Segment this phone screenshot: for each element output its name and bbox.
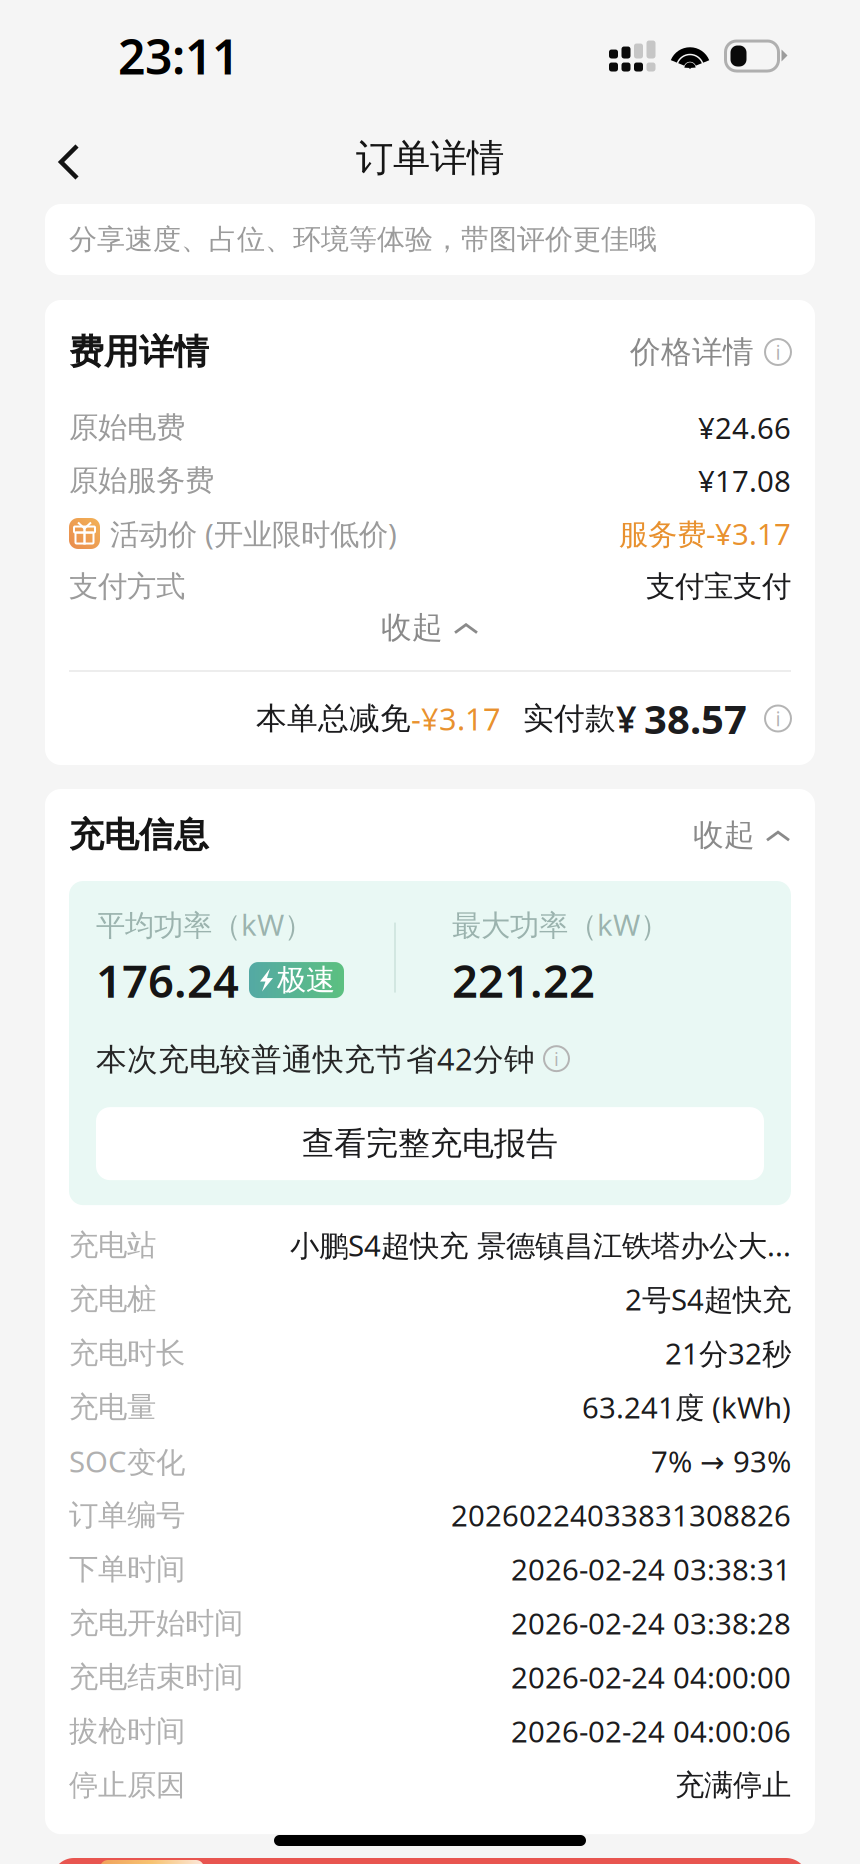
button[interactable]: 收起: [69, 613, 791, 642]
staticText: 221.22: [452, 950, 595, 1010]
staticText: ¥24.66: [698, 408, 791, 447]
staticText: 7% → 93%: [651, 1442, 791, 1481]
button[interactable]: 本单总减免: [69, 672, 791, 765]
button[interactable]: 返回: [0, 121, 111, 195]
staticText: 176.24: [96, 950, 239, 1010]
staticText: 2026-02-24 04:00:06: [511, 1712, 791, 1751]
staticText: 充满停止: [675, 1767, 791, 1803]
staticText: 21分32秒: [665, 1334, 791, 1373]
staticText: 收起: [381, 609, 443, 646]
staticText: 本单总减免: [256, 700, 411, 737]
staticText: 查看完整充电报告: [302, 1124, 558, 1163]
staticText: 订单详情: [356, 135, 504, 181]
staticText: 2026-02-24 03:38:28: [511, 1604, 791, 1643]
staticText: 充电结束时间: [69, 1659, 243, 1695]
staticText: 价格详情: [630, 333, 754, 371]
staticText: 最大功率（kW）: [452, 905, 669, 944]
button[interactable]: 收起: [693, 816, 791, 854]
staticText: 分享速度、占位、环境等体验，带图评价更佳哦: [69, 222, 657, 257]
staticText: 服务费-¥3.17: [619, 514, 791, 553]
staticText: ¥17.08: [698, 461, 791, 500]
button[interactable]: 价格详情: [630, 333, 791, 371]
staticText: -¥3.17: [411, 698, 501, 739]
staticText: 费用详情: [69, 331, 209, 373]
staticText: 充电时长: [69, 1335, 185, 1371]
staticText: 充电站: [69, 1227, 156, 1263]
staticText: 原始服务费: [69, 462, 214, 498]
button[interactable]: 分享速度、占位、环境等体验，带图评价更佳哦: [45, 204, 815, 275]
staticText: 充电桩: [69, 1281, 156, 1317]
staticText: 支付方式: [69, 568, 185, 604]
staticText: 2026-02-24 04:00:00: [511, 1658, 791, 1697]
staticText: 充电量: [69, 1389, 156, 1425]
staticText: i: [775, 705, 780, 732]
staticText: 停止原因: [69, 1767, 185, 1803]
staticText: 38.57: [644, 692, 747, 745]
staticText: 2号S4超快充: [625, 1280, 791, 1319]
button[interactable]: 查看完整充电报告: [96, 1107, 764, 1180]
staticText: 小鹏S4超快充 景德镇昌江铁塔办公大...: [290, 1226, 791, 1265]
staticText: 拔枪时间: [69, 1713, 185, 1749]
staticText: 63.241度 (kWh): [582, 1388, 791, 1427]
staticText: 原始电费: [69, 409, 185, 445]
staticText: 支付宝支付: [646, 568, 791, 604]
staticText: ¥: [616, 695, 637, 742]
staticText: 20260224033831308826: [451, 1496, 791, 1535]
staticText: 充电开始时间: [69, 1605, 243, 1641]
staticText: 充电信息: [69, 814, 209, 856]
staticText: 23:11: [118, 24, 239, 88]
staticText: 极速: [277, 962, 335, 998]
staticText: 活动价 (开业限时低价): [110, 514, 397, 553]
staticText: SOC变化: [69, 1442, 185, 1481]
staticText: 2026-02-24 03:38:31: [511, 1550, 791, 1589]
staticText: 下单时间: [69, 1551, 185, 1587]
staticText: 本次充电较普通快充节省42分钟: [96, 1038, 535, 1079]
staticText: 实付款: [523, 700, 616, 737]
staticText: i: [554, 1046, 559, 1071]
staticText: i: [775, 339, 780, 365]
staticText: 订单编号: [69, 1497, 185, 1533]
staticText: 收起: [693, 816, 755, 854]
staticText: 平均功率（kW）: [96, 905, 313, 944]
